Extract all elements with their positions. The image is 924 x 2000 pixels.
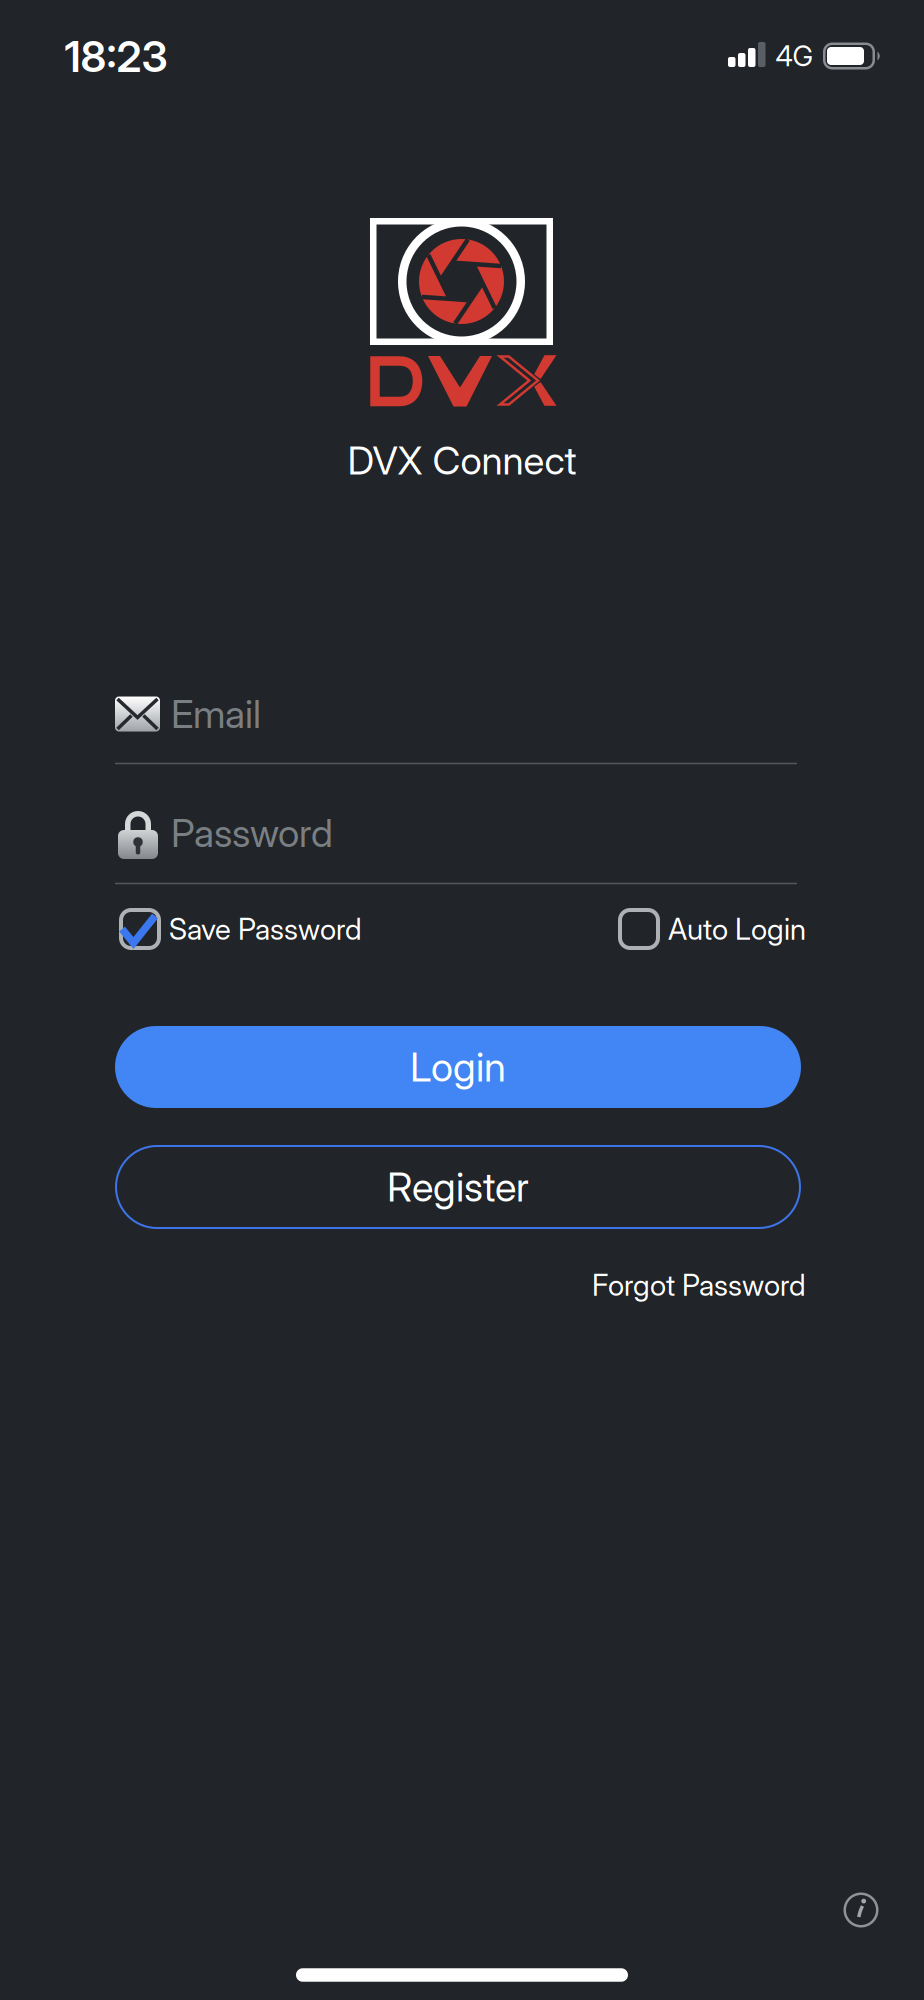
staticText: Register [387,1163,529,1211]
button[interactable]: Save Password [119,908,362,950]
staticText: Forgot Password [592,1268,806,1302]
button[interactable]: Login [115,1026,801,1108]
staticText: 4G [775,39,812,72]
staticText: Email [171,691,261,737]
staticText: DVX Connect [347,438,576,483]
staticText: Password [171,810,333,856]
button[interactable]: Info [843,1892,878,1927]
staticText: Auto Login [668,912,806,946]
staticText: Save Password [169,912,362,946]
button[interactable]: Forgot Password [592,1268,806,1302]
staticText: 18:23 [64,31,167,82]
button[interactable]: Auto Login [618,908,806,950]
staticText: Login [410,1043,506,1091]
button[interactable]: Register [115,1145,801,1229]
